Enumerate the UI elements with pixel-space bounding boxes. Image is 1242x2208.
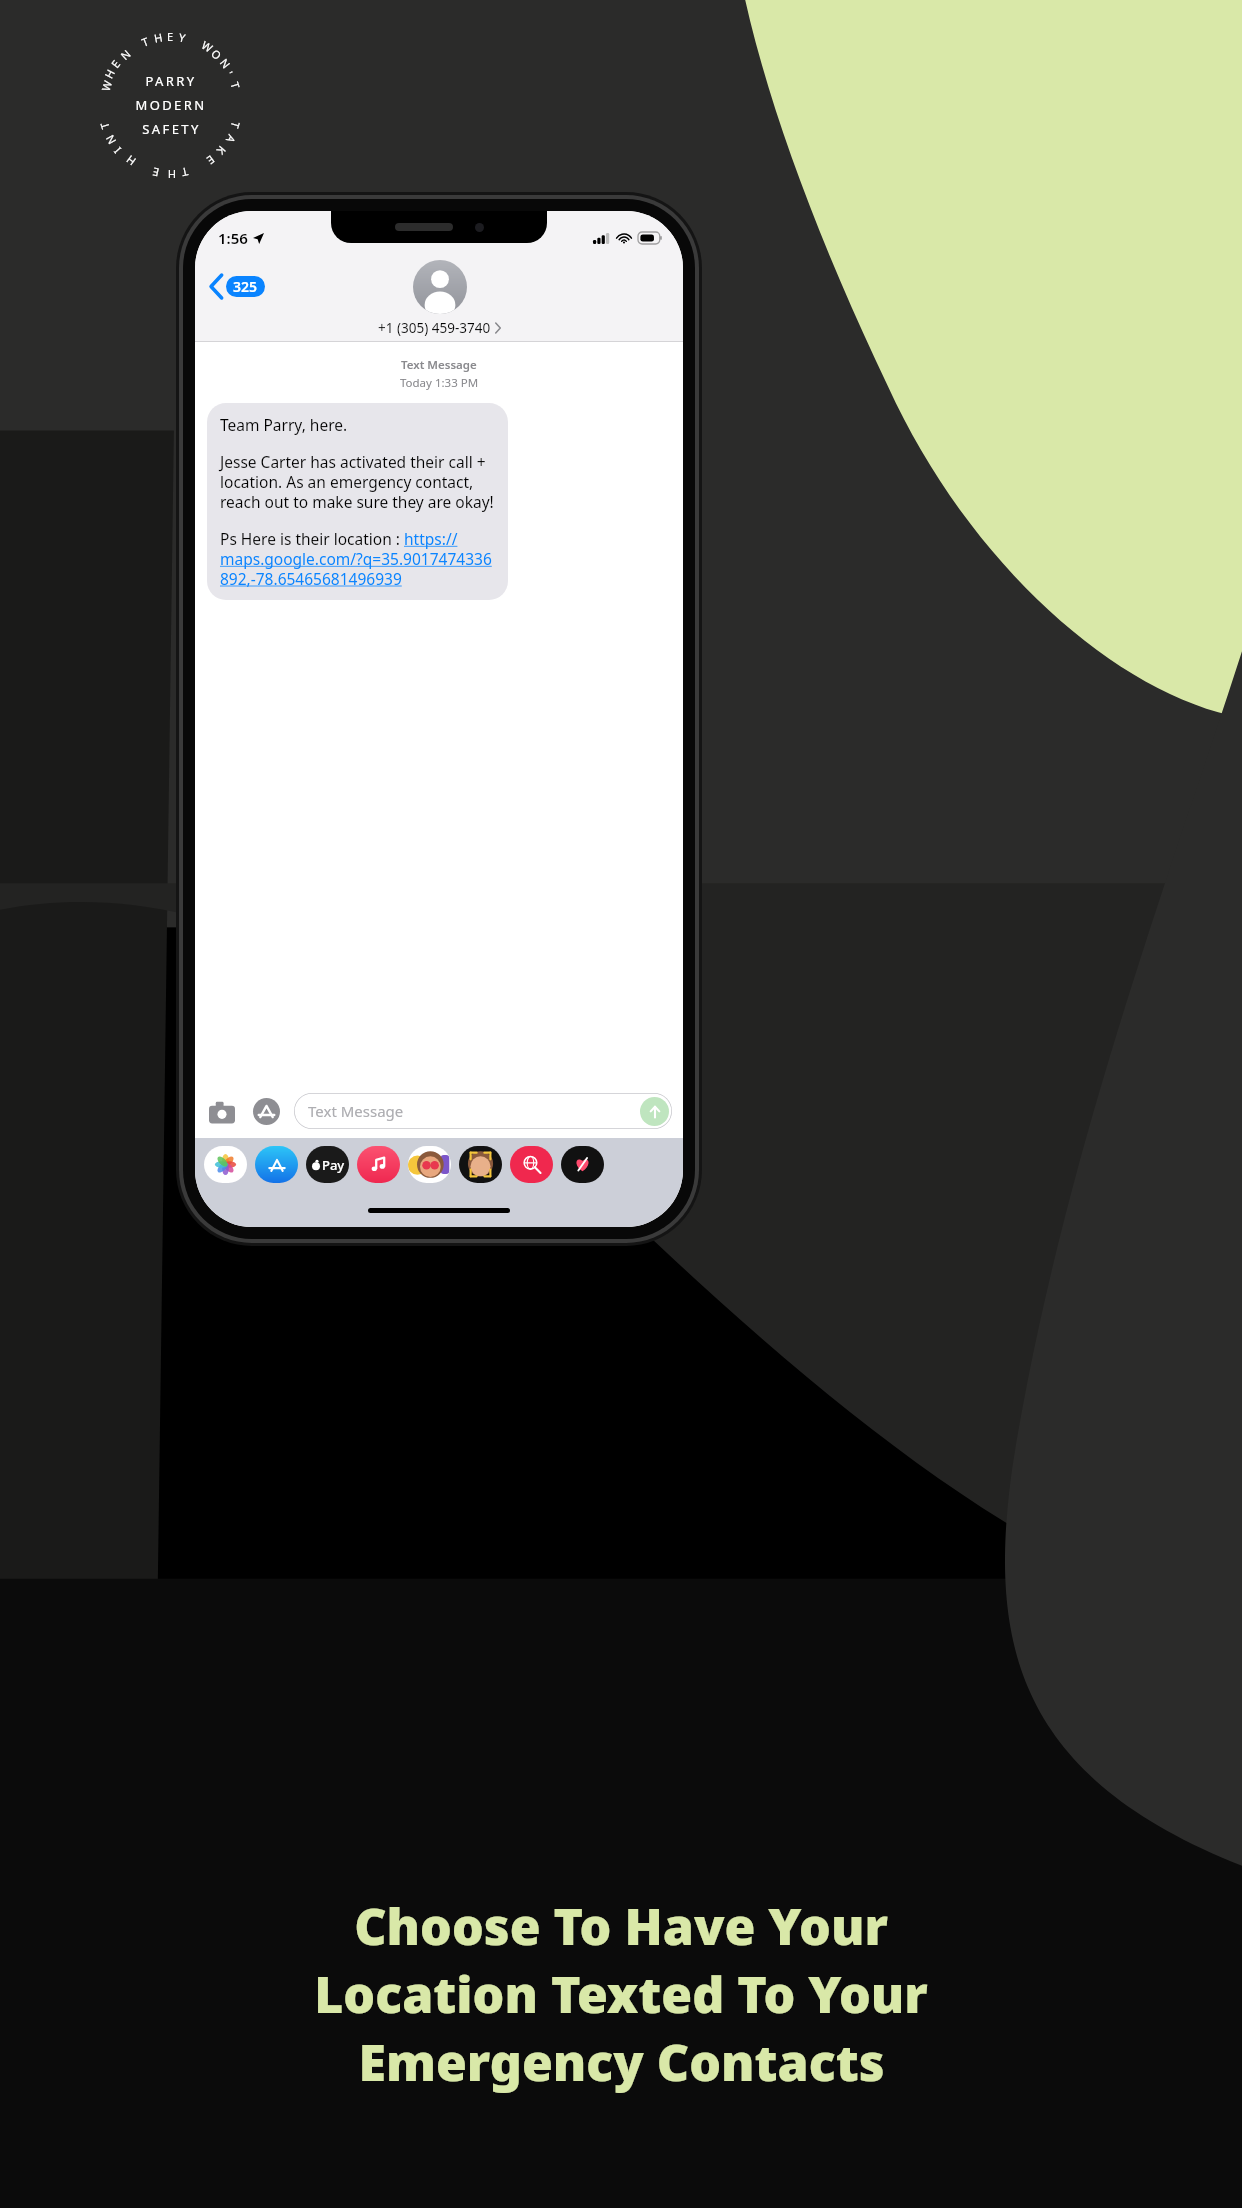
staticText: Team Parry, here. xyxy=(220,414,348,435)
button[interactable]: App Store xyxy=(251,1096,282,1127)
button[interactable]: +1 (305) 459-3740 xyxy=(378,319,501,337)
staticText xyxy=(127,39,138,54)
staticText: E xyxy=(167,29,174,44)
button[interactable]: Memoji xyxy=(459,1145,502,1183)
staticText: E xyxy=(150,164,160,180)
staticText: T xyxy=(179,164,189,180)
staticText: T xyxy=(140,33,151,50)
staticText: W xyxy=(199,37,216,56)
button[interactable]: Team Parry, here. xyxy=(207,403,508,600)
staticText: Jesse Carter has activated their call + … xyxy=(220,451,495,512)
button[interactable]: Photos xyxy=(204,1145,247,1183)
staticText: H xyxy=(167,167,176,182)
staticText: 1:56 xyxy=(218,228,248,248)
staticText: Text Message xyxy=(401,357,477,373)
button[interactable]: Contact avatar xyxy=(413,260,467,314)
staticText: MODERN xyxy=(135,96,207,114)
staticText: Today 1:33 PM xyxy=(400,375,479,391)
button[interactable]: Memoji stickers xyxy=(408,1145,451,1183)
staticText: H xyxy=(153,29,164,46)
staticText: I xyxy=(110,144,124,157)
button[interactable]: Apple Pay xyxy=(306,1145,349,1183)
staticText: H xyxy=(122,152,139,169)
staticText: T xyxy=(227,80,244,91)
staticText: Pay xyxy=(322,1156,345,1174)
staticText: W xyxy=(98,78,115,93)
staticText: +1 (305) 459-3740 xyxy=(378,319,491,337)
staticText: T xyxy=(227,120,244,131)
staticText: PARRY xyxy=(145,72,197,90)
staticText: N xyxy=(217,55,234,72)
staticText: N xyxy=(117,46,134,63)
staticText: H xyxy=(101,66,118,81)
button[interactable]: Images xyxy=(510,1145,553,1183)
button[interactable]: 325 xyxy=(206,272,269,301)
button[interactable]: Send xyxy=(640,1097,669,1126)
staticText: SAFETY xyxy=(142,120,201,138)
staticText: 325 xyxy=(233,277,258,296)
button[interactable]: Music xyxy=(357,1145,400,1183)
staticText: A xyxy=(222,132,239,147)
staticText: T xyxy=(96,120,113,131)
staticText: O xyxy=(208,46,225,63)
staticText: Choose To Have Your xyxy=(354,1892,888,1960)
staticText: Text Message xyxy=(308,1101,404,1121)
staticText: E xyxy=(203,152,218,169)
button[interactable]: Text Message xyxy=(294,1093,672,1129)
button[interactable]: Digital Touch xyxy=(561,1145,604,1183)
staticText: E xyxy=(107,56,123,71)
button[interactable]: App Store xyxy=(255,1145,298,1183)
staticText: Y xyxy=(178,29,187,45)
staticText: ' xyxy=(222,69,237,78)
staticText: Emergency Contacts xyxy=(358,2028,885,2096)
staticText: K xyxy=(214,143,229,158)
staticText: N xyxy=(102,132,119,147)
staticText: Location Texted To Your xyxy=(314,1960,928,2028)
staticText: Ps Here is their location : https://maps… xyxy=(220,528,495,589)
button[interactable]: Camera xyxy=(206,1096,237,1127)
